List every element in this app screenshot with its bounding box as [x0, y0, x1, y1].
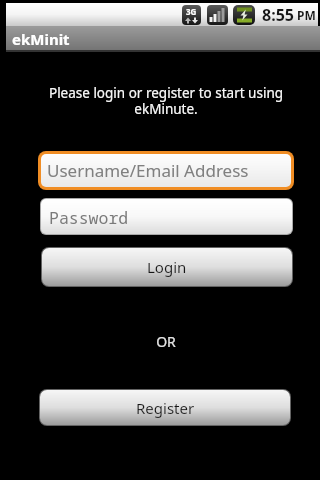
staticText: ekMinit	[12, 29, 70, 49]
staticText: 3G	[186, 6, 197, 17]
staticText: Login	[147, 257, 187, 277]
staticText: 8:55	[262, 4, 294, 26]
staticText: Password	[49, 206, 129, 228]
staticText: Please login or register to start using …	[12, 84, 320, 118]
button[interactable]: Login	[42, 248, 292, 286]
staticText: PM	[297, 7, 316, 23]
staticText: Register	[136, 398, 195, 418]
button[interactable]: Username/Email Address	[41, 154, 291, 187]
button[interactable]: Password	[41, 199, 292, 234]
button[interactable]: Register	[40, 390, 290, 425]
staticText: Username/Email Address	[47, 159, 249, 182]
staticText: OR	[12, 332, 320, 351]
